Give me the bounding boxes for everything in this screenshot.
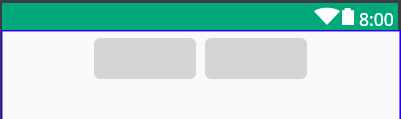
other: Wi-Fi signal <box>314 8 340 25</box>
other: Battery <box>342 8 354 25</box>
staticText: 8:00 <box>359 7 394 31</box>
